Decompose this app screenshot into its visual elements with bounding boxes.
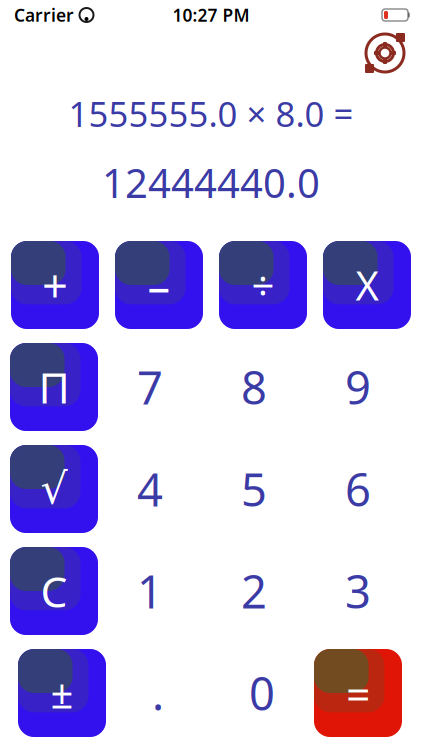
button[interactable]: 0 [210,649,314,737]
button[interactable]: ÷ [219,241,307,329]
button[interactable]: √ [10,445,98,533]
staticText: 7 [137,356,163,418]
staticText: П [38,359,69,415]
staticText: 3 [345,560,371,622]
staticText: = [346,665,370,721]
staticText: X [355,258,378,311]
button[interactable]: 1 [98,547,202,635]
button[interactable]: = [314,649,402,737]
staticText: 1555555.0 × 8.0 = [68,90,353,137]
staticText: 2 [241,560,267,622]
staticText: 4 [137,458,163,520]
staticText: √ [40,465,67,513]
staticText: 10:27 PM [172,3,249,26]
button[interactable]: 8 [202,343,306,431]
staticText: 6 [345,458,371,520]
staticText: 5 [241,458,267,520]
button[interactable]: 3 [306,547,410,635]
button[interactable]: 7 [98,343,202,431]
button[interactable]: 4 [98,445,202,533]
button[interactable]: 6 [306,445,410,533]
staticText: – [147,255,170,315]
staticText: . [152,662,164,724]
staticText: 8 [241,356,267,418]
staticText: ± [50,666,73,719]
button[interactable]: Settings [362,30,408,76]
button[interactable]: X [323,241,411,329]
button[interactable]: 2 [202,547,306,635]
staticText: 0 [249,662,275,724]
staticText: 9 [345,356,371,418]
button[interactable]: ± [18,649,106,737]
button[interactable]: + [11,241,99,329]
staticText: C [40,563,67,619]
staticText: ÷ [251,258,274,311]
staticText: + [42,255,68,315]
staticText: Carrier [14,3,74,26]
button[interactable]: . [106,649,210,737]
button[interactable]: П [10,343,98,431]
button[interactable]: 5 [202,445,306,533]
button[interactable]: – [115,241,203,329]
button[interactable]: C [10,547,98,635]
staticText: 12444440.0 [102,155,320,210]
staticText: 1 [137,560,163,622]
button[interactable]: 9 [306,343,410,431]
